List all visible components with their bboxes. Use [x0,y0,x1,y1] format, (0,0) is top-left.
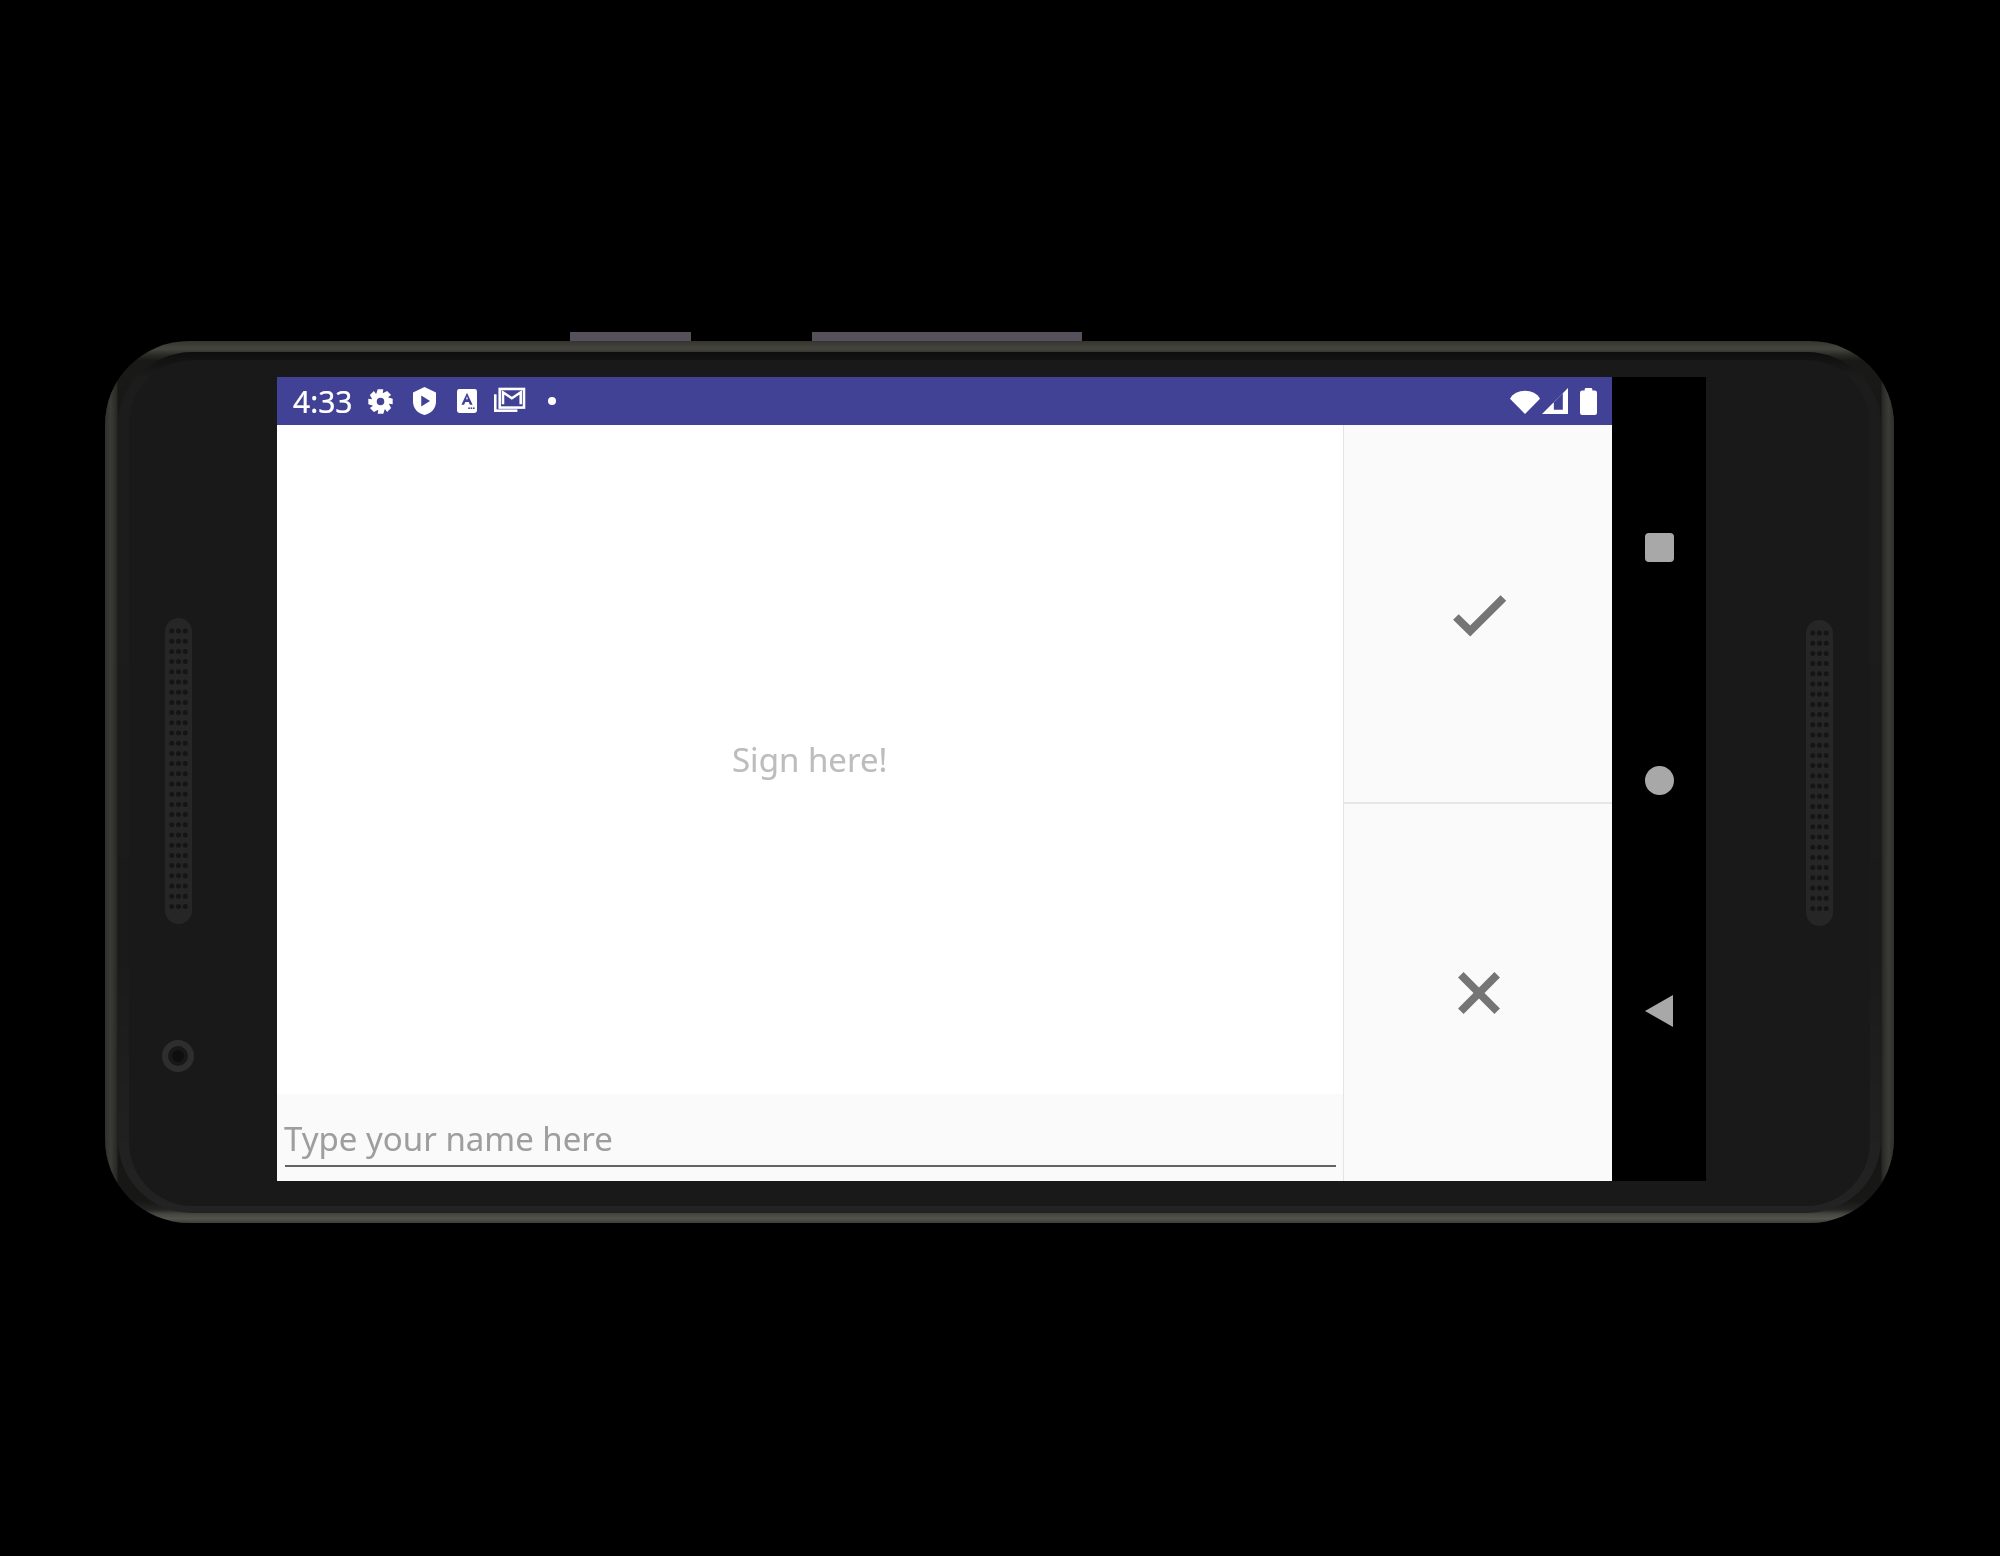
staticText: Type your name here [284,1116,613,1161]
button[interactable]: Home [1612,740,1706,820]
button[interactable]: Recents [1612,507,1706,587]
button[interactable]: Back [1612,971,1706,1051]
staticText: 4:33 [293,381,353,422]
staticText: Sign here! [732,737,888,782]
button[interactable]: Clear signature [1344,804,1612,1181]
button[interactable]: Type your name here [277,1094,1343,1181]
button[interactable]: Accept signature [1344,425,1612,802]
